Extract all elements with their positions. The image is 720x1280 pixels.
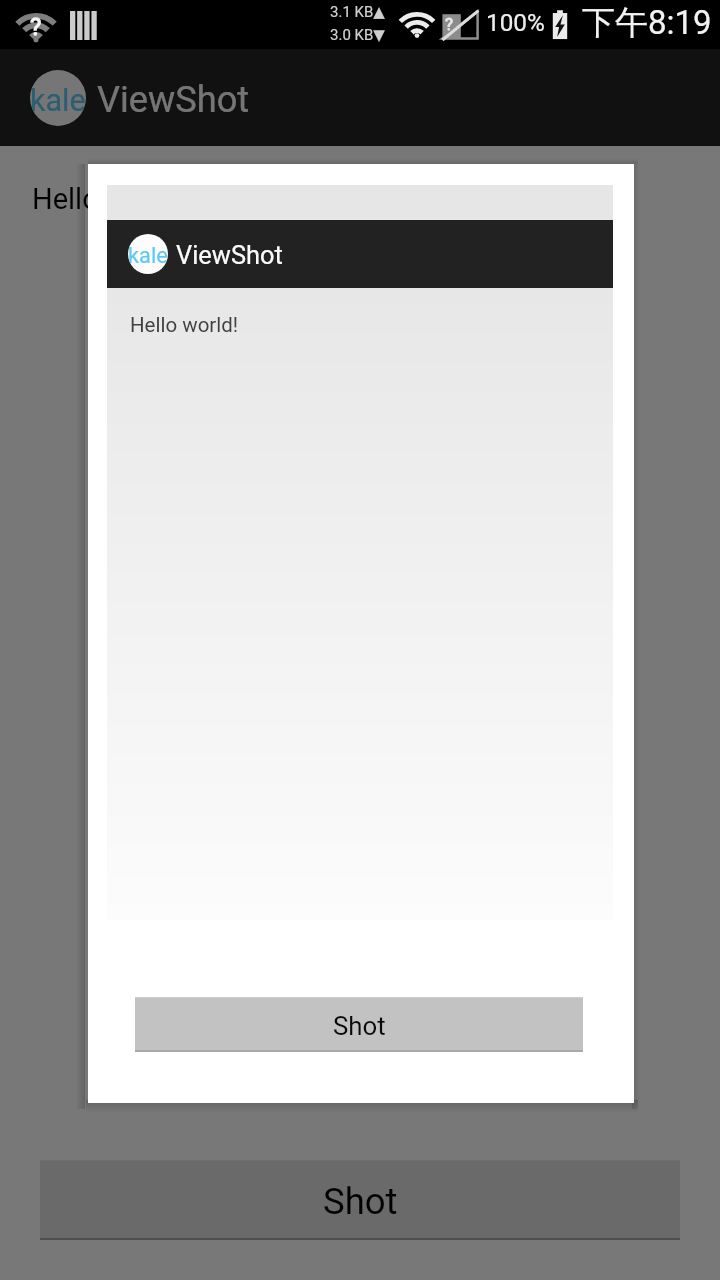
staticText: ViewShot [176, 240, 283, 270]
staticText: Shot [333, 1011, 386, 1041]
staticText: Shot [323, 1180, 398, 1223]
staticText: kale [30, 83, 86, 119]
staticText: ViewShot [97, 78, 250, 120]
staticText: kale [128, 243, 168, 269]
staticText: ? [30, 13, 42, 41]
button[interactable]: Shot [40, 1160, 680, 1240]
staticText: 3.0 KB▼ [330, 26, 385, 44]
staticText: Hello world! [130, 313, 239, 337]
staticText: Hello world! [32, 182, 185, 216]
staticText: 下午8:19 [582, 2, 712, 44]
staticText: 100% [486, 8, 545, 36]
staticText: 3.1 KB▲ [330, 3, 385, 21]
button[interactable]: Shot [135, 997, 583, 1052]
staticText: ? [445, 14, 454, 34]
